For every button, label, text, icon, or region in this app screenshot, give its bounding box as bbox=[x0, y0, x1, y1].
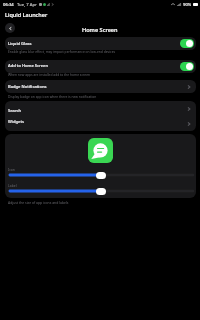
button[interactable]: Icon size slider bbox=[9, 171, 193, 179]
button[interactable]: Toggle bbox=[180, 62, 194, 71]
button[interactable]: Open bbox=[5, 80, 196, 93]
staticText: Tue, 7 Apr bbox=[17, 2, 37, 8]
button[interactable]: Toggle bbox=[180, 39, 194, 48]
staticText: Adjust the size of app icons and labels bbox=[8, 200, 69, 205]
staticText: Add to Home Screen bbox=[8, 63, 48, 69]
staticText: Enable glass blur effect, may impact per… bbox=[8, 49, 116, 53]
button[interactable]: Toggle bbox=[5, 37, 196, 50]
button[interactable] bbox=[5, 101, 196, 131]
button[interactable]: Open bbox=[5, 101, 196, 116]
button[interactable]: Label size slider bbox=[9, 187, 193, 195]
staticText: Icon bbox=[8, 167, 15, 172]
staticText: Home Screen bbox=[82, 26, 118, 34]
staticText: When new apps are installed add to the h… bbox=[8, 72, 91, 76]
staticText: Label bbox=[8, 183, 17, 188]
staticText: 90% bbox=[183, 2, 192, 8]
button[interactable]: Open bbox=[5, 116, 196, 131]
staticText: Liquid Glass bbox=[8, 41, 32, 47]
staticText: Widgets bbox=[8, 119, 24, 125]
button[interactable]: Toggle bbox=[5, 60, 196, 73]
button[interactable]: App icon preview bbox=[88, 138, 113, 163]
other: Open bbox=[186, 84, 192, 90]
other: Open bbox=[186, 106, 192, 112]
staticText: 06:34 bbox=[3, 2, 14, 8]
staticText: Search bbox=[8, 108, 22, 114]
other: Open bbox=[186, 121, 192, 127]
staticText: Liquid Launcher bbox=[5, 11, 48, 18]
staticText: Badge Notifications bbox=[8, 84, 47, 90]
staticText: Display badge on app icon when there is … bbox=[8, 94, 97, 98]
button[interactable]: Back bbox=[5, 23, 15, 33]
